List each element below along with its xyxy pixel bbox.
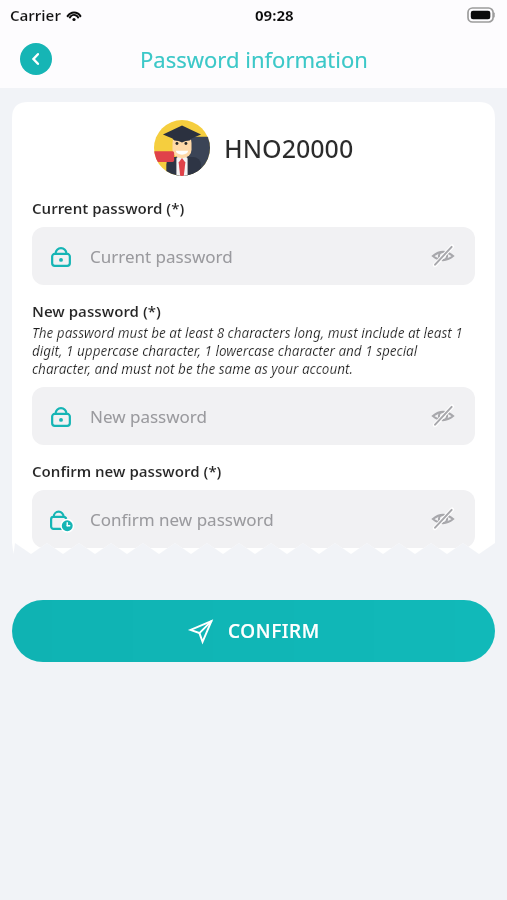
staticText: CONFIRM [228, 618, 320, 644]
staticText: Current password (*) [32, 198, 185, 218]
staticText: New password (*) [32, 301, 161, 321]
button[interactable]: Current password [32, 227, 475, 285]
staticText: Password information [140, 44, 368, 74]
staticText: Current password [90, 245, 427, 268]
staticText: The password must be at least 8 characte… [32, 324, 475, 378]
staticText: Confirm new password (*) [32, 461, 222, 481]
button[interactable]: New password [32, 387, 475, 445]
staticText: Carrier [10, 5, 61, 25]
button[interactable]: Show password [427, 240, 459, 272]
staticText: 09:28 [255, 5, 294, 25]
button[interactable]: Show password [427, 503, 459, 535]
button[interactable]: CONFIRM [12, 600, 495, 662]
button[interactable]: Confirm new password [32, 490, 475, 548]
staticText: HNO20000 [224, 131, 354, 165]
staticText: New password [90, 405, 427, 428]
staticText: Confirm new password [90, 508, 427, 531]
button[interactable]: Show password [427, 400, 459, 432]
button[interactable]: Back [20, 43, 52, 75]
